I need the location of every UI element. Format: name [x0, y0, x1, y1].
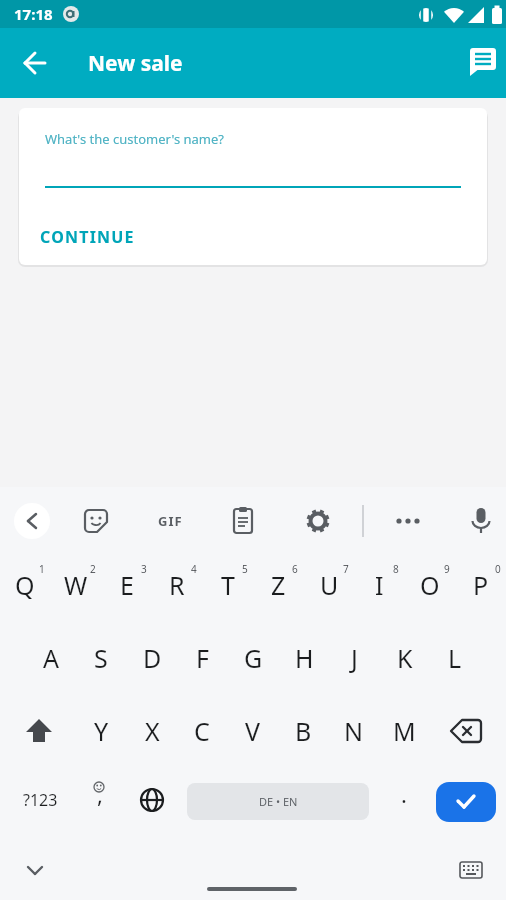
- button[interactable]: X: [127, 709, 177, 753]
- button[interactable]: P: [456, 563, 506, 607]
- staticText: 5: [242, 562, 248, 576]
- staticText: E: [120, 568, 134, 602]
- button[interactable]: V: [228, 709, 278, 753]
- button[interactable]: G: [228, 636, 278, 680]
- staticText: ,: [97, 779, 103, 809]
- staticText: J: [351, 641, 358, 675]
- button[interactable]: [73, 487, 146, 551]
- staticText: L: [448, 641, 462, 675]
- staticText: I: [375, 568, 384, 602]
- button[interactable]: [146, 487, 218, 551]
- button[interactable]: [458, 39, 498, 87]
- staticText: 4: [191, 562, 197, 576]
- button[interactable]: [0, 487, 73, 551]
- button[interactable]: [362, 487, 434, 551]
- staticText: A: [43, 641, 59, 675]
- button[interactable]: H: [279, 636, 329, 680]
- staticText: 1: [39, 562, 45, 576]
- staticText: T: [221, 568, 235, 602]
- staticText: DE • EN: [259, 794, 298, 809]
- staticText: Q: [15, 568, 35, 602]
- staticText: ?123: [23, 789, 58, 811]
- staticText: New sale: [88, 49, 183, 78]
- staticText: U: [320, 568, 339, 602]
- staticText: R: [169, 568, 185, 602]
- button[interactable]: Z: [253, 563, 303, 607]
- button[interactable]: S: [76, 636, 126, 680]
- button[interactable]: [436, 782, 496, 822]
- button[interactable]: [434, 487, 506, 551]
- staticText: M: [393, 714, 416, 748]
- staticText: Z: [271, 568, 286, 602]
- button[interactable]: ?123: [14, 778, 66, 822]
- button[interactable]: U: [304, 563, 354, 607]
- staticText: X: [145, 714, 160, 748]
- button[interactable]: M: [379, 709, 429, 753]
- button[interactable]: I: [354, 563, 404, 607]
- button[interactable]: [440, 709, 492, 753]
- button[interactable]: K: [380, 636, 430, 680]
- button[interactable]: D: [127, 636, 177, 680]
- staticText: 8: [393, 562, 399, 576]
- staticText: K: [397, 641, 413, 675]
- button[interactable]: A: [26, 636, 76, 680]
- staticText: W: [64, 568, 88, 602]
- button[interactable]: [290, 487, 362, 551]
- button[interactable]: DE • EN: [187, 783, 369, 820]
- button[interactable]: L: [430, 636, 480, 680]
- button[interactable]: B: [278, 709, 328, 753]
- button[interactable]: ,: [80, 778, 120, 822]
- staticText: N: [344, 714, 364, 748]
- staticText: V: [245, 714, 261, 748]
- button[interactable]: W: [51, 563, 101, 607]
- button[interactable]: N: [329, 709, 379, 753]
- button[interactable]: [452, 853, 492, 881]
- staticText: P: [473, 568, 489, 602]
- staticText: 0: [495, 562, 501, 576]
- button[interactable]: O: [405, 563, 455, 607]
- button[interactable]: Q: [0, 563, 50, 607]
- button[interactable]: [18, 853, 54, 881]
- button[interactable]: [218, 487, 290, 551]
- button[interactable]: R: [152, 563, 202, 607]
- button[interactable]: E: [102, 563, 152, 607]
- staticText: 3: [141, 562, 147, 576]
- staticText: .: [401, 779, 407, 809]
- staticText: S: [94, 641, 108, 675]
- staticText: 9: [444, 562, 450, 576]
- staticText: GIF: [158, 512, 183, 530]
- staticText: D: [143, 641, 162, 675]
- staticText: C: [194, 714, 210, 748]
- staticText: 7: [343, 562, 349, 576]
- button[interactable]: [14, 709, 66, 753]
- staticText: G: [244, 641, 263, 675]
- staticText: F: [196, 641, 209, 675]
- staticText: 17:18: [14, 4, 53, 24]
- button[interactable]: [132, 778, 172, 822]
- button[interactable]: T: [203, 563, 253, 607]
- button[interactable]: C: [177, 709, 227, 753]
- staticText: CONTINUE: [40, 226, 135, 248]
- staticText: B: [295, 714, 312, 748]
- button[interactable]: F: [177, 636, 227, 680]
- button[interactable]: [12, 39, 48, 87]
- button[interactable]: .: [384, 778, 424, 822]
- button[interactable]: J: [329, 636, 379, 680]
- button[interactable]: Y: [76, 709, 126, 753]
- staticText: 2: [90, 562, 96, 576]
- staticText: Y: [94, 714, 109, 748]
- staticText: O: [420, 568, 440, 602]
- button[interactable]: CONTINUE: [40, 226, 135, 248]
- staticText: 6: [292, 562, 298, 576]
- staticText: H: [295, 641, 314, 675]
- staticText: What's the customer's name?: [45, 130, 224, 148]
